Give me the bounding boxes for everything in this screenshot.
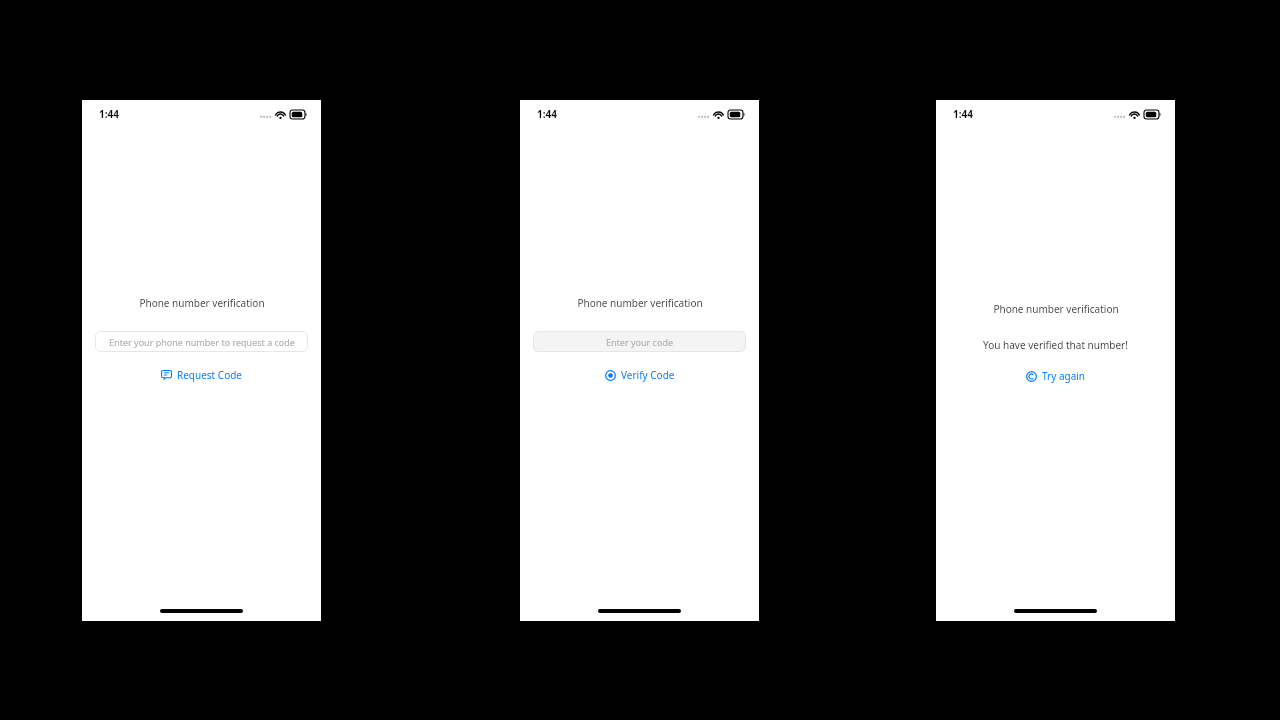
button[interactable]: Verify Code [597, 365, 683, 385]
staticText: Verify Code [621, 368, 675, 382]
staticText: Enter your code [606, 336, 673, 348]
staticText: 1:44 [99, 107, 119, 121]
staticText: 1:44 [537, 107, 557, 121]
button[interactable]: Request Code [153, 365, 250, 385]
button[interactable]: Enter your phone number to request a cod… [95, 331, 308, 352]
staticText: 1:44 [953, 107, 973, 121]
staticText: Enter your phone number to request a cod… [109, 336, 295, 348]
staticText: You have verified that number! [983, 338, 1128, 352]
staticText: Phone number verification [577, 296, 703, 310]
staticText: Request Code [177, 368, 242, 382]
staticText: Phone number verification [993, 302, 1119, 316]
button[interactable]: Enter your code [533, 331, 746, 352]
button[interactable]: Try again [1018, 366, 1094, 386]
staticText: Try again [1042, 369, 1086, 383]
staticText: Phone number verification [139, 296, 265, 310]
